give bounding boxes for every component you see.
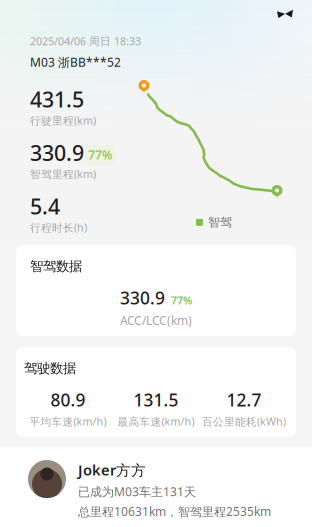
staticText: 总里程10631km，智驾里程2535km (78, 503, 271, 519)
staticText: 5.4 (30, 192, 60, 220)
staticText: ACC/LCC(km) (120, 312, 192, 328)
staticText: 77% (88, 147, 112, 163)
staticText: M03 浙BB***52 (30, 54, 121, 70)
staticText: 最高车速(km/h) (117, 414, 194, 429)
staticText: 智驾里程(km) (30, 167, 96, 181)
staticText: 平均车速(km/h) (29, 414, 106, 429)
staticText: 2025/04/06 周日 18:33 (30, 34, 141, 48)
staticText: 80.9 (50, 388, 85, 411)
staticText: 12.7 (226, 388, 261, 411)
staticText: 行驶里程(km) (30, 113, 96, 127)
staticText: 行程时长(h) (30, 220, 87, 234)
staticText: 131.5 (133, 388, 178, 411)
staticText: 77% (171, 293, 192, 307)
staticText: 330.9 (30, 138, 84, 167)
staticText: 431.5 (30, 85, 84, 113)
staticText: 330.9 (120, 286, 165, 309)
staticText: 智驾数据 (30, 258, 82, 274)
staticText: 驾驶数据 (24, 360, 76, 376)
button[interactable]: Joker方方 (0, 447, 312, 527)
staticText: 已成为M03车主131天 (78, 484, 196, 499)
staticText: Joker方方 (78, 460, 146, 480)
staticText: 百公里能耗(kWh) (202, 414, 286, 429)
staticText: 智驾 (208, 215, 232, 230)
button[interactable]: Brand logo (271, 4, 299, 24)
